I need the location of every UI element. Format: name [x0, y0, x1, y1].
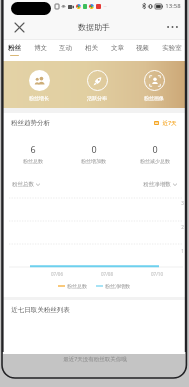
staticText: 2	[181, 224, 184, 230]
button[interactable]: More options	[164, 19, 180, 35]
staticText: 0	[91, 143, 97, 155]
staticText: 6	[30, 143, 36, 155]
staticText: 最近7天没有粉丝取关你哦	[63, 355, 127, 363]
button[interactable]: 粉丝	[6, 40, 23, 56]
button[interactable]: Close	[11, 19, 27, 35]
button[interactable]: 活跃分布	[77, 70, 117, 101]
staticText: 粉丝净增数	[105, 283, 130, 289]
button[interactable]: 视频	[134, 40, 151, 55]
staticText: 粉丝净增数	[143, 181, 171, 188]
staticText: 互动	[59, 44, 72, 52]
staticText: 数据助手	[78, 22, 110, 32]
staticText: ···	[103, 4, 107, 9]
staticText: 相关	[85, 44, 98, 52]
staticText: 实验室	[162, 44, 182, 52]
staticText: 粉丝画像	[144, 95, 164, 101]
staticText: 近7天	[162, 119, 177, 127]
button[interactable]: 互动	[57, 40, 74, 55]
staticText: 文章	[111, 44, 124, 52]
staticText: 粉丝趋势分析	[11, 119, 50, 127]
staticText: 13:58	[165, 2, 181, 10]
staticText: 粉丝增加数	[81, 158, 106, 164]
staticText: 粉丝总数	[67, 283, 87, 289]
button[interactable]: 粉丝净增数	[143, 181, 177, 188]
staticText: 07/06	[51, 271, 63, 277]
button[interactable]: 文章	[109, 40, 126, 55]
staticText: 粉丝	[8, 44, 21, 52]
button[interactable]: 粉丝总数	[12, 181, 40, 188]
button[interactable]: 相关	[83, 40, 100, 55]
staticText: 博文	[34, 44, 47, 52]
staticText: 07/10	[151, 271, 163, 277]
button[interactable]: 实验室	[160, 40, 184, 55]
staticText: 粉丝减少总数	[140, 158, 170, 164]
staticText: 1	[181, 248, 184, 254]
button[interactable]: 博文	[32, 40, 49, 55]
staticText: 粉丝增长	[29, 95, 49, 101]
staticText: 粉丝总数	[23, 158, 43, 164]
staticText: 07/08	[101, 271, 113, 277]
staticText: 3	[181, 200, 184, 206]
staticText: 粉丝总数	[12, 181, 34, 188]
button[interactable]: 近7天	[154, 119, 177, 127]
button[interactable]: 粉丝画像	[134, 70, 174, 101]
staticText: 活跃分布	[87, 95, 107, 101]
button[interactable]: 粉丝增长	[19, 70, 59, 101]
staticText: 近七日取关粉丝列表	[11, 306, 70, 314]
staticText: 视频	[136, 44, 149, 52]
staticText: 0	[152, 143, 158, 155]
